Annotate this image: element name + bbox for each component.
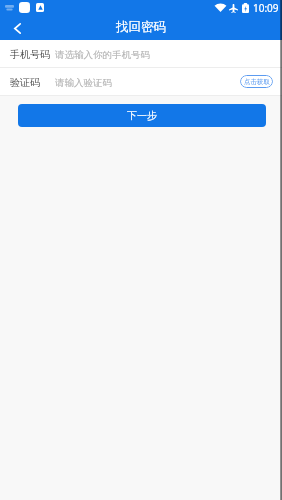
staticText: 手机号码 bbox=[10, 48, 50, 61]
staticText: 验证码 bbox=[10, 76, 40, 89]
staticText: 请选输入你的手机号码 bbox=[55, 49, 150, 61]
button[interactable]: Back bbox=[5, 16, 29, 40]
staticText: 点击获取 bbox=[244, 78, 270, 86]
button[interactable]: 手机号码 bbox=[0, 40, 282, 67]
staticText: 请输入验证码 bbox=[55, 77, 112, 89]
button[interactable]: 点击获取 bbox=[240, 75, 273, 88]
button[interactable]: 验证码 bbox=[0, 68, 282, 95]
staticText: 10:09 bbox=[253, 1, 279, 15]
staticText: 下一步 bbox=[127, 109, 157, 122]
staticText: 找回密码 bbox=[116, 19, 166, 35]
button[interactable]: 下一步 bbox=[18, 104, 266, 127]
